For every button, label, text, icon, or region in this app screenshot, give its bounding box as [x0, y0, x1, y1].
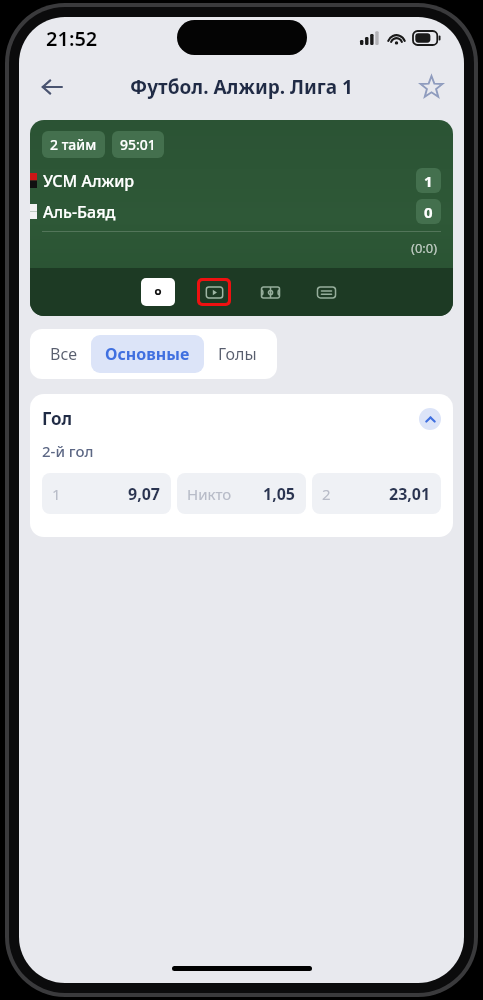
staticText: УСМ Алжир	[43, 170, 135, 192]
button[interactable]: Add to favourites	[409, 65, 453, 109]
button[interactable]: Lineups	[309, 278, 343, 306]
staticText: 1	[52, 484, 61, 504]
staticText: Гол	[42, 407, 73, 430]
staticText: 21:52	[46, 25, 98, 52]
staticText: 0	[424, 202, 433, 222]
button[interactable]: Никто	[177, 473, 306, 514]
staticText: Футбол. Алжир. Лига 1	[130, 74, 353, 100]
button[interactable]: 2 тайм	[30, 120, 453, 316]
staticText: 1,05	[263, 483, 296, 505]
button[interactable]: Video broadcast	[200, 281, 228, 303]
button[interactable]: Field statistics	[253, 278, 287, 306]
staticText: Все	[50, 343, 77, 365]
button[interactable]: Back	[30, 65, 74, 109]
staticText: 2	[322, 484, 331, 504]
button[interactable]: 1	[42, 473, 171, 514]
staticText: (0:0)	[411, 239, 438, 257]
other: Collapse	[419, 408, 441, 430]
staticText: 2-й гол	[42, 441, 94, 461]
staticText: 1	[424, 171, 433, 191]
staticText: Голы	[218, 343, 257, 365]
button[interactable]: Все	[36, 335, 91, 373]
staticText: 2 тайм	[50, 135, 97, 154]
staticText: Никто	[187, 484, 232, 504]
staticText: 95:01	[120, 135, 156, 154]
staticText: 9,07	[128, 483, 161, 505]
staticText: 23,01	[389, 483, 431, 505]
button[interactable]: Основные	[91, 335, 204, 373]
button[interactable]: Голы	[204, 335, 271, 373]
staticText: Основные	[105, 343, 190, 365]
staticText: Аль-Баяд	[43, 201, 116, 223]
button[interactable]: Гол	[42, 407, 441, 430]
button[interactable]: 2	[312, 473, 441, 514]
button[interactable]: Match details	[141, 278, 175, 306]
